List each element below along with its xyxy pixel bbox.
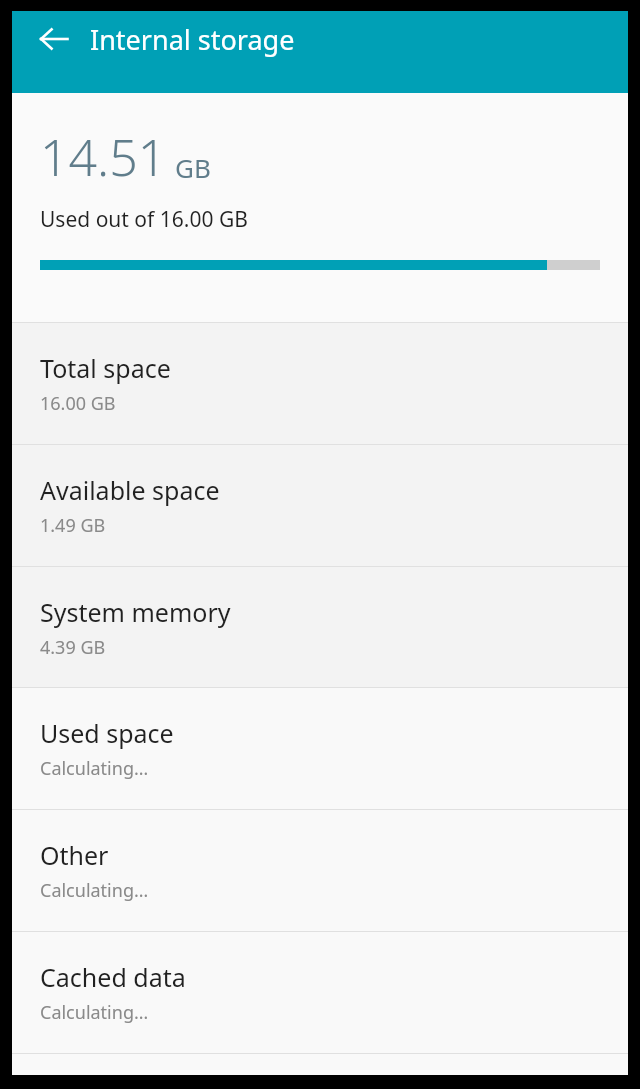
staticText: GB bbox=[175, 150, 211, 185]
staticText: Available space bbox=[40, 473, 220, 507]
staticText: 1.49 GB bbox=[40, 513, 106, 538]
button[interactable]: Used space bbox=[12, 688, 628, 809]
button[interactable]: Cached data bbox=[12, 932, 628, 1053]
staticText: Other bbox=[40, 838, 109, 872]
button[interactable]: Back bbox=[26, 11, 82, 67]
staticText: Calculating… bbox=[40, 1000, 149, 1025]
staticText: Calculating… bbox=[40, 756, 149, 781]
staticText: 16.00 GB bbox=[40, 391, 116, 416]
staticText: 4.39 GB bbox=[40, 635, 106, 660]
staticText: System memory bbox=[40, 595, 231, 629]
staticText: Calculating… bbox=[40, 878, 149, 903]
button[interactable]: Available space bbox=[12, 445, 628, 566]
button[interactable]: Other bbox=[12, 810, 628, 931]
staticText: Used space bbox=[40, 716, 174, 750]
staticText: Internal storage bbox=[90, 21, 295, 58]
staticText: Cached data bbox=[40, 960, 186, 994]
button[interactable]: System memory bbox=[12, 567, 628, 687]
staticText: 14.51 bbox=[40, 123, 167, 191]
staticText: Total space bbox=[40, 351, 171, 385]
button[interactable]: Total space bbox=[12, 323, 628, 444]
staticText: Used out of 16.00 GB bbox=[40, 205, 248, 234]
